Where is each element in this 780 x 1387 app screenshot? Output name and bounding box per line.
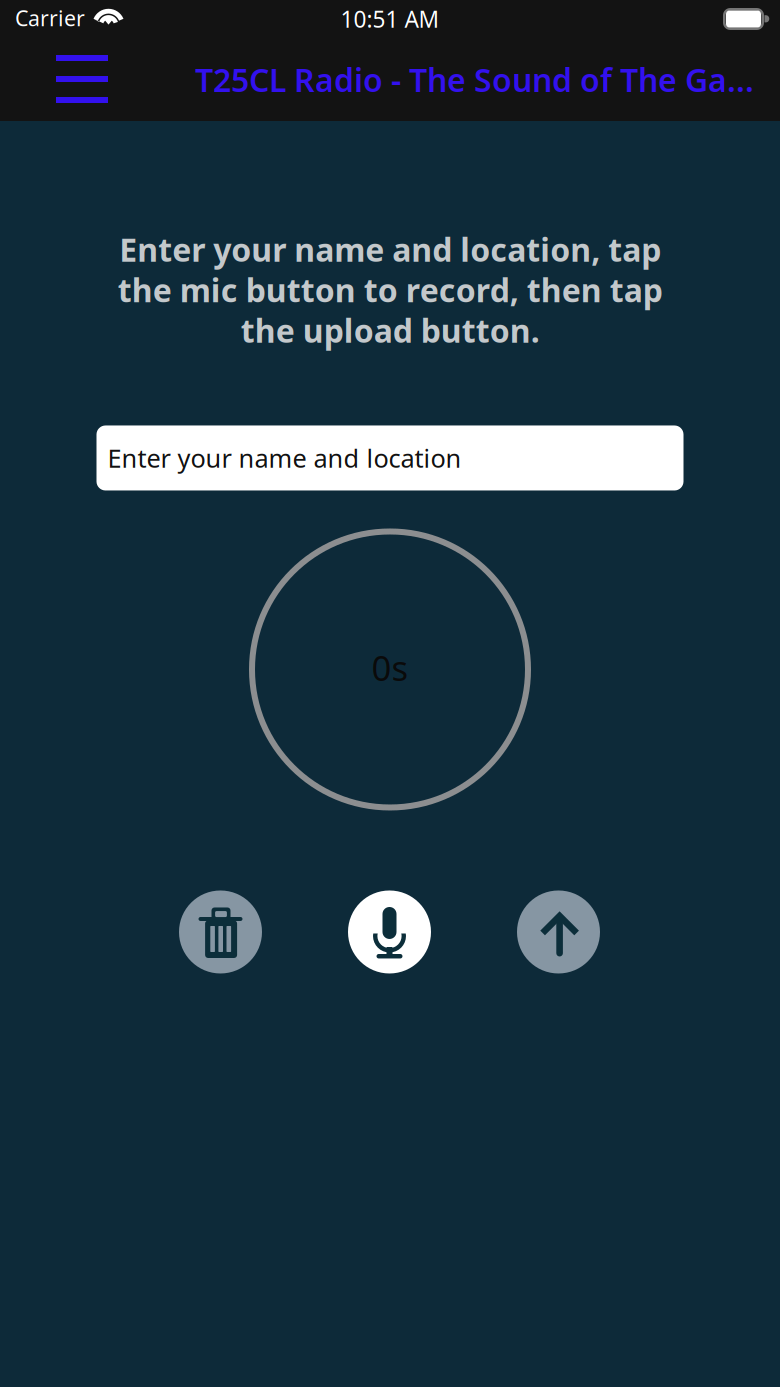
- button[interactable]: Record: [348, 890, 431, 973]
- staticText: T25CL Radio - The Sound of The Ga...: [195, 58, 754, 101]
- button[interactable]: Menu: [43, 44, 121, 121]
- button[interactable]: T25CL Radio - The Sound of The Ga...: [195, 44, 754, 121]
- staticText: 10:51 AM: [340, 4, 439, 34]
- staticText: Enter your name and location: [107, 441, 461, 475]
- staticText: Enter your name and location, tap the mi…: [117, 228, 662, 351]
- staticText: Carrier: [15, 4, 85, 32]
- staticText: 0s: [371, 644, 408, 690]
- button[interactable]: Delete recording: [179, 890, 262, 973]
- button[interactable]: Upload: [517, 890, 600, 973]
